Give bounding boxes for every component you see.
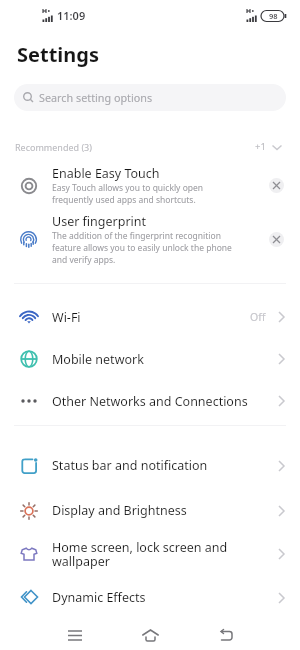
staticText: Mobile network (52, 351, 144, 368)
button[interactable] (37, 620, 113, 650)
staticText: Status bar and notification (52, 457, 208, 474)
staticText: 11:09 (57, 8, 86, 23)
button[interactable]: Other Networks and Connections (0, 380, 300, 422)
button[interactable]: +1 (255, 140, 282, 153)
button[interactable]: Status bar and notification (0, 443, 300, 488)
staticText: Other Networks and Connections (52, 393, 248, 410)
staticText: +1 (255, 140, 266, 153)
button[interactable] (188, 620, 263, 650)
staticText: Recommended (3) (15, 141, 92, 153)
staticText: Settings (17, 41, 99, 68)
button[interactable]: Display and Brightness (0, 488, 300, 533)
staticText: Search setting options (39, 90, 153, 105)
staticText: Enable Easy Touch (52, 165, 160, 182)
button[interactable]: Enable Easy Touch (0, 165, 300, 206)
staticText: 98 (269, 11, 278, 21)
staticText: Home screen, lock screen and wallpaper (52, 539, 228, 570)
staticText: The addition of the fingerprint recognit… (52, 230, 221, 242)
staticText: frequently used apps and shortcuts. (52, 194, 196, 206)
staticText: feature allows you to easily unlock the … (52, 242, 232, 254)
staticText: Display and Brightness (52, 502, 187, 519)
button[interactable]: Search setting options (14, 84, 286, 111)
staticText: Wi-Fi (52, 309, 81, 326)
button[interactable] (113, 620, 188, 650)
staticText: Off (250, 310, 266, 324)
button[interactable]: User fingerprint (0, 213, 300, 266)
staticText: Dynamic Effects (52, 589, 146, 606)
button[interactable]: Mobile network (0, 338, 300, 380)
button[interactable] (269, 178, 284, 193)
button[interactable] (269, 232, 284, 247)
button[interactable]: Wi-Fi (0, 296, 300, 338)
staticText: and verify apps. (52, 254, 116, 266)
button[interactable]: Dynamic Effects (0, 575, 300, 620)
staticText: Easy Touch allows you to quickly open (52, 182, 204, 194)
button[interactable]: Home screen, lock screen and wallpaper (0, 533, 300, 575)
staticText: User fingerprint (52, 213, 147, 230)
